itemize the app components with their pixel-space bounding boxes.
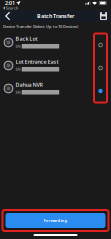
button[interactable]: Select Dahua NVR [95,79,106,102]
button[interactable]: Select Lot Entrance East [95,56,106,79]
button[interactable]: Export [94,10,111,22]
button[interactable]: Forwarding [5,213,105,228]
staticText: Search [6,5,19,11]
staticText: SN [15,67,20,72]
button[interactable]: Back Lot [0,33,111,56]
staticText: Device Transfer (Select Up to 10 Devices… [3,24,78,29]
staticText: SN [15,44,20,49]
button[interactable]: Select Back Lot [95,33,106,56]
staticText: Back Lot [15,35,37,42]
staticText: Dahua NVR [15,81,42,88]
staticText: 2:01 [5,0,15,7]
button[interactable]: Lot Entrance East [0,56,111,79]
staticText: Lot Entrance East [15,58,58,65]
button[interactable]: Dahua NVR [0,79,111,102]
button[interactable]: Back [0,10,16,22]
staticText: Batch Transfer [37,12,74,20]
staticText: SN [15,90,20,95]
staticText: Forwarding [43,218,67,223]
